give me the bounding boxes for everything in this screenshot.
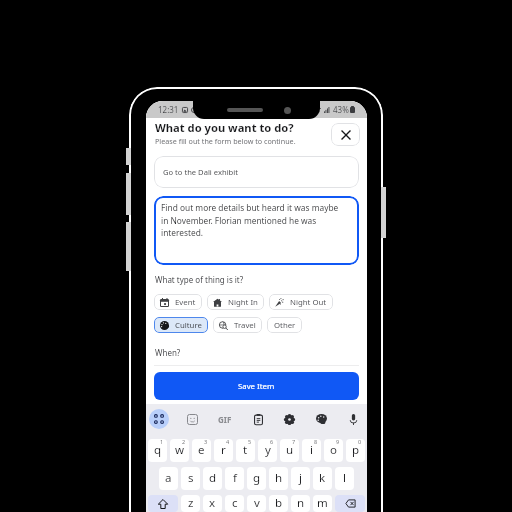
button[interactable]: Event [154, 294, 202, 310]
staticText: What do you want to do? [155, 120, 294, 135]
staticText: i [310, 442, 313, 458]
button[interactable]: Voice input [344, 410, 362, 428]
staticText: 12:31 [158, 104, 179, 115]
button[interactable]: e [192, 439, 211, 462]
staticText: p [352, 442, 360, 458]
button[interactable]: i [302, 439, 321, 462]
button[interactable]: Night In [207, 294, 264, 310]
button[interactable]: Close [331, 123, 360, 146]
staticText: Travel [234, 320, 256, 331]
staticText: 7 [292, 439, 296, 445]
button[interactable]: Save Item [154, 372, 359, 400]
button[interactable]: d [203, 467, 222, 490]
button[interactable]: j [291, 467, 310, 490]
staticText: o [330, 442, 337, 458]
staticText: m [317, 495, 328, 511]
staticText: q [154, 442, 162, 458]
staticText: 0 [358, 439, 362, 445]
button[interactable]: b [269, 495, 288, 512]
staticText: v [254, 495, 260, 511]
staticText: n [297, 495, 305, 511]
staticText: s [188, 470, 194, 486]
button[interactable]: x [203, 495, 222, 512]
staticText: x [209, 495, 216, 511]
staticText: Save Item [238, 381, 275, 392]
button[interactable]: k [313, 467, 332, 490]
staticText: Culture [175, 320, 202, 331]
button[interactable]: n [291, 495, 310, 512]
button[interactable]: Backspace [335, 495, 365, 512]
button[interactable]: h [269, 467, 288, 490]
staticText: Night In [228, 297, 258, 308]
staticText: GIF [218, 414, 232, 425]
button[interactable]: Other [267, 317, 302, 333]
staticText: 43% [333, 104, 349, 115]
button[interactable]: Shift [148, 495, 178, 512]
staticText: Please fill out the form below to contin… [155, 136, 296, 146]
staticText: w [175, 442, 185, 458]
staticText: What type of thing is it? [155, 274, 244, 285]
staticText: r [221, 442, 226, 458]
staticText: b [275, 495, 283, 511]
staticText: 2 [182, 439, 186, 445]
staticText: 1 [160, 439, 164, 445]
staticText: e [198, 442, 205, 458]
staticText: z [188, 495, 194, 511]
button[interactable]: Find out more details but heard it was m… [154, 196, 359, 265]
button[interactable]: Apps [149, 409, 169, 429]
button[interactable]: Settings [280, 410, 298, 428]
staticText: 4 [226, 439, 230, 445]
staticText: a [165, 470, 172, 486]
button[interactable]: Stickers [183, 410, 201, 428]
staticText: Go to the Dali exhibit [163, 167, 238, 177]
staticText: t [243, 442, 248, 458]
button[interactable]: a [159, 467, 178, 490]
staticText: When? [155, 347, 181, 358]
button[interactable]: Travel [213, 317, 262, 333]
staticText: Find out more details but heard it was m… [161, 202, 341, 238]
button[interactable]: Clipboard [249, 410, 267, 428]
staticText: g [253, 470, 261, 486]
staticText: j [299, 470, 302, 486]
button[interactable]: y [258, 439, 277, 462]
staticText: u [286, 442, 294, 458]
staticText: d [209, 470, 217, 486]
staticText: 9 [336, 439, 340, 445]
button[interactable]: Night Out [269, 294, 333, 310]
button[interactable]: v [247, 495, 266, 512]
staticText: h [275, 470, 283, 486]
staticText: Night Out [290, 297, 327, 308]
button[interactable]: p [346, 439, 365, 462]
button[interactable]: w [170, 439, 189, 462]
button[interactable]: Culture [154, 317, 208, 333]
button[interactable]: t [236, 439, 255, 462]
button[interactable]: g [247, 467, 266, 490]
staticText: 3 [204, 439, 208, 445]
button[interactable]: u [280, 439, 299, 462]
button[interactable]: l [335, 467, 354, 490]
staticText: f [233, 470, 237, 486]
button[interactable]: Theme [312, 410, 330, 428]
staticText: c [232, 495, 238, 511]
staticText: l [343, 470, 346, 486]
button[interactable]: r [214, 439, 233, 462]
button[interactable]: z [181, 495, 200, 512]
button[interactable]: Go to the Dali exhibit [154, 156, 359, 188]
staticText: Other [274, 320, 296, 331]
button[interactable]: q [148, 439, 167, 462]
staticText: 5 [248, 439, 252, 445]
staticText: y [265, 442, 271, 458]
button[interactable]: o [324, 439, 343, 462]
button[interactable]: c [225, 495, 244, 512]
button[interactable]: f [225, 467, 244, 490]
button[interactable]: s [181, 467, 200, 490]
staticText: 6 [270, 439, 274, 445]
button[interactable]: GIF [215, 409, 235, 429]
staticText: k [319, 470, 326, 486]
staticText: Event [175, 297, 196, 308]
staticText: 8 [314, 439, 318, 445]
button[interactable]: m [313, 495, 332, 512]
